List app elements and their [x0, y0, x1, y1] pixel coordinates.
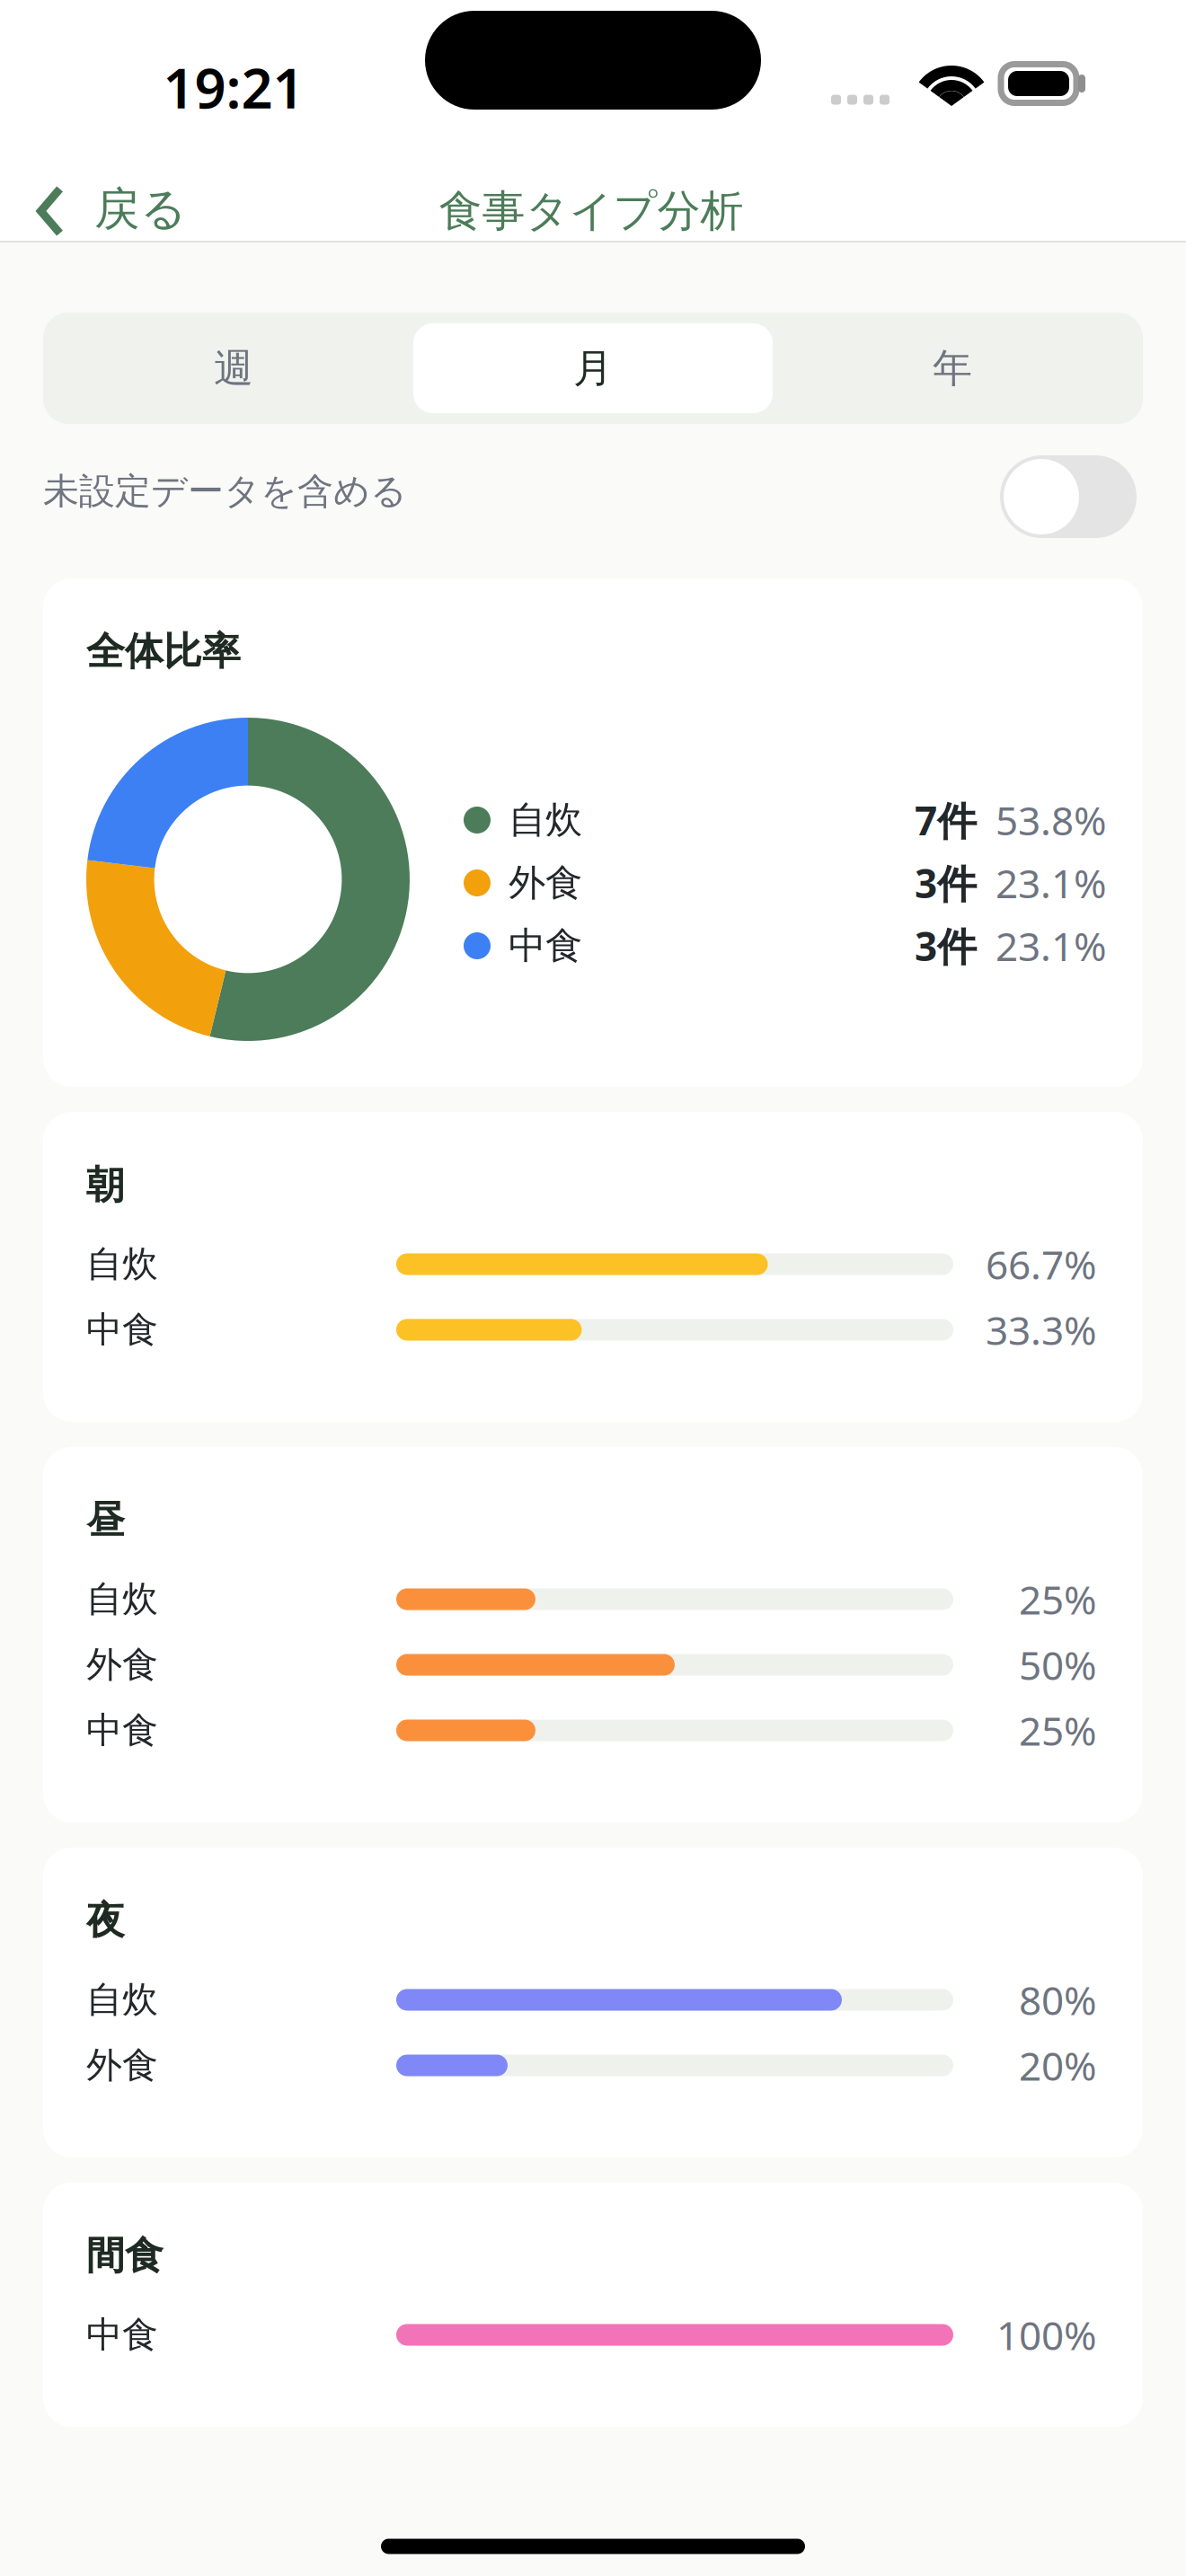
staticText: 外食 — [86, 1643, 158, 1687]
staticText: 中食 — [86, 1308, 158, 1352]
staticText: 7件 — [915, 794, 977, 846]
staticText: 中食 — [86, 1708, 158, 1752]
staticText: 週 — [214, 344, 253, 393]
button[interactable]: 月 — [413, 323, 773, 413]
staticText: 50% — [1019, 1639, 1097, 1691]
button[interactable]: 週 — [54, 323, 413, 413]
staticText: 3件 — [915, 857, 977, 909]
staticText: 66.7% — [986, 1238, 1097, 1290]
staticText: 昼 — [86, 1496, 125, 1543]
staticText: 53.8% — [996, 794, 1107, 846]
staticText: 23.1% — [996, 920, 1107, 972]
staticText: 年 — [933, 344, 972, 393]
staticText: 外食 — [86, 2043, 158, 2087]
staticText: 33.3% — [986, 1304, 1097, 1356]
staticText: 食事タイプ分析 — [439, 185, 743, 238]
staticText: 月 — [573, 344, 613, 393]
staticText: 自炊 — [86, 1577, 158, 1621]
staticText: 中食 — [86, 2313, 158, 2357]
staticText: 25% — [1019, 1704, 1097, 1757]
staticText: 自炊 — [86, 1242, 158, 1286]
staticText: 中食 — [509, 923, 582, 969]
staticText: 未設定データを含める — [43, 469, 407, 513]
staticText: 全体比率 — [86, 628, 241, 675]
staticText: 20% — [1019, 2039, 1097, 2092]
staticText: 3件 — [915, 920, 977, 972]
staticText: 戻る — [94, 181, 187, 237]
staticText: 23.1% — [996, 857, 1107, 909]
button[interactable]: 年 — [773, 323, 1132, 413]
button[interactable]: 未設定データを含める — [1006, 450, 1143, 533]
staticText: 自炊 — [509, 797, 582, 843]
staticText: 100% — [996, 2309, 1097, 2361]
staticText: 19:21 — [163, 51, 304, 124]
staticText: 25% — [1019, 1573, 1097, 1625]
staticText: 朝 — [86, 1161, 125, 1208]
staticText: 夜 — [86, 1897, 125, 1944]
staticText: 自炊 — [86, 1978, 158, 2022]
staticText: 間食 — [86, 2232, 164, 2279]
button[interactable]: 戻る — [0, 138, 205, 237]
staticText: 外食 — [509, 860, 582, 906]
staticText: 80% — [1019, 1974, 1097, 2026]
